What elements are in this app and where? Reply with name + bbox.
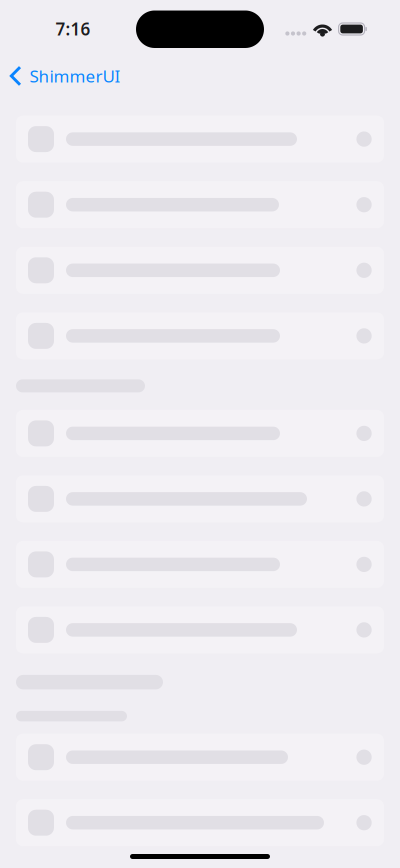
staticText: 7:16 — [55, 17, 90, 41]
button[interactable]: Loading item — [16, 116, 384, 163]
button[interactable]: Loading item — [16, 541, 384, 588]
button[interactable]: Loading item — [16, 606, 384, 653]
button[interactable]: Loading item — [16, 734, 384, 781]
button[interactable]: Loading item — [16, 247, 384, 294]
button[interactable]: Loading item — [16, 799, 384, 846]
staticText: ShimmerUI — [30, 64, 121, 88]
button[interactable]: ShimmerUI — [0, 54, 400, 98]
button[interactable]: Loading item — [16, 181, 384, 228]
button[interactable]: Loading item — [16, 410, 384, 457]
button[interactable]: Loading item — [16, 475, 384, 522]
button[interactable]: Loading item — [16, 312, 384, 359]
